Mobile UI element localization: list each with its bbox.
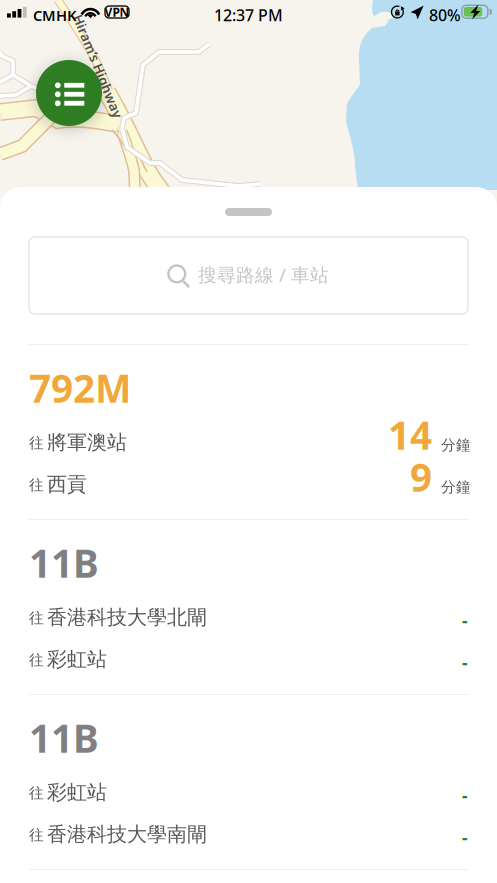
staticText: 彩虹站 xyxy=(47,647,107,672)
staticText: 分鐘 xyxy=(441,436,471,454)
staticText: 搜尋路線 / 車站 xyxy=(198,262,329,287)
button[interactable]: Route list xyxy=(36,60,102,126)
staticText: 11B xyxy=(29,712,99,763)
staticText: 往 xyxy=(29,651,44,669)
staticText: 往 xyxy=(29,826,44,844)
staticText: 往 xyxy=(29,784,44,802)
staticText: - xyxy=(462,651,468,674)
staticText: 9 xyxy=(410,451,432,502)
staticText: 將軍澳站 xyxy=(47,430,127,455)
staticText: 11B xyxy=(29,537,99,588)
staticText: 往 xyxy=(29,609,44,627)
staticText: 香港科技大學北閘 xyxy=(47,605,207,630)
staticText: Hiram’s Highway xyxy=(43,57,153,75)
staticText: - xyxy=(462,609,468,632)
staticText: 80% xyxy=(429,4,461,26)
button[interactable]: 11B xyxy=(29,519,468,694)
staticText: 分鐘 xyxy=(441,478,471,496)
staticText: - xyxy=(462,826,468,849)
staticText: 西貢 xyxy=(47,472,87,497)
staticText: 往 xyxy=(29,434,44,452)
staticText: VPN xyxy=(104,4,129,20)
staticText: 792M xyxy=(29,362,131,413)
button[interactable]: 11B xyxy=(29,694,468,869)
staticText: 彩虹站 xyxy=(47,780,107,805)
staticText: CMHK xyxy=(33,5,76,25)
button[interactable]: 搜尋路線 / 車站 xyxy=(29,237,468,314)
staticText: - xyxy=(462,784,468,807)
staticText: 香港科技大學南閘 xyxy=(47,822,207,847)
staticText: 14 xyxy=(388,409,432,460)
staticText: 往 xyxy=(29,476,44,494)
staticText: 12:37 PM xyxy=(214,4,283,26)
button[interactable]: 792M xyxy=(29,344,468,519)
